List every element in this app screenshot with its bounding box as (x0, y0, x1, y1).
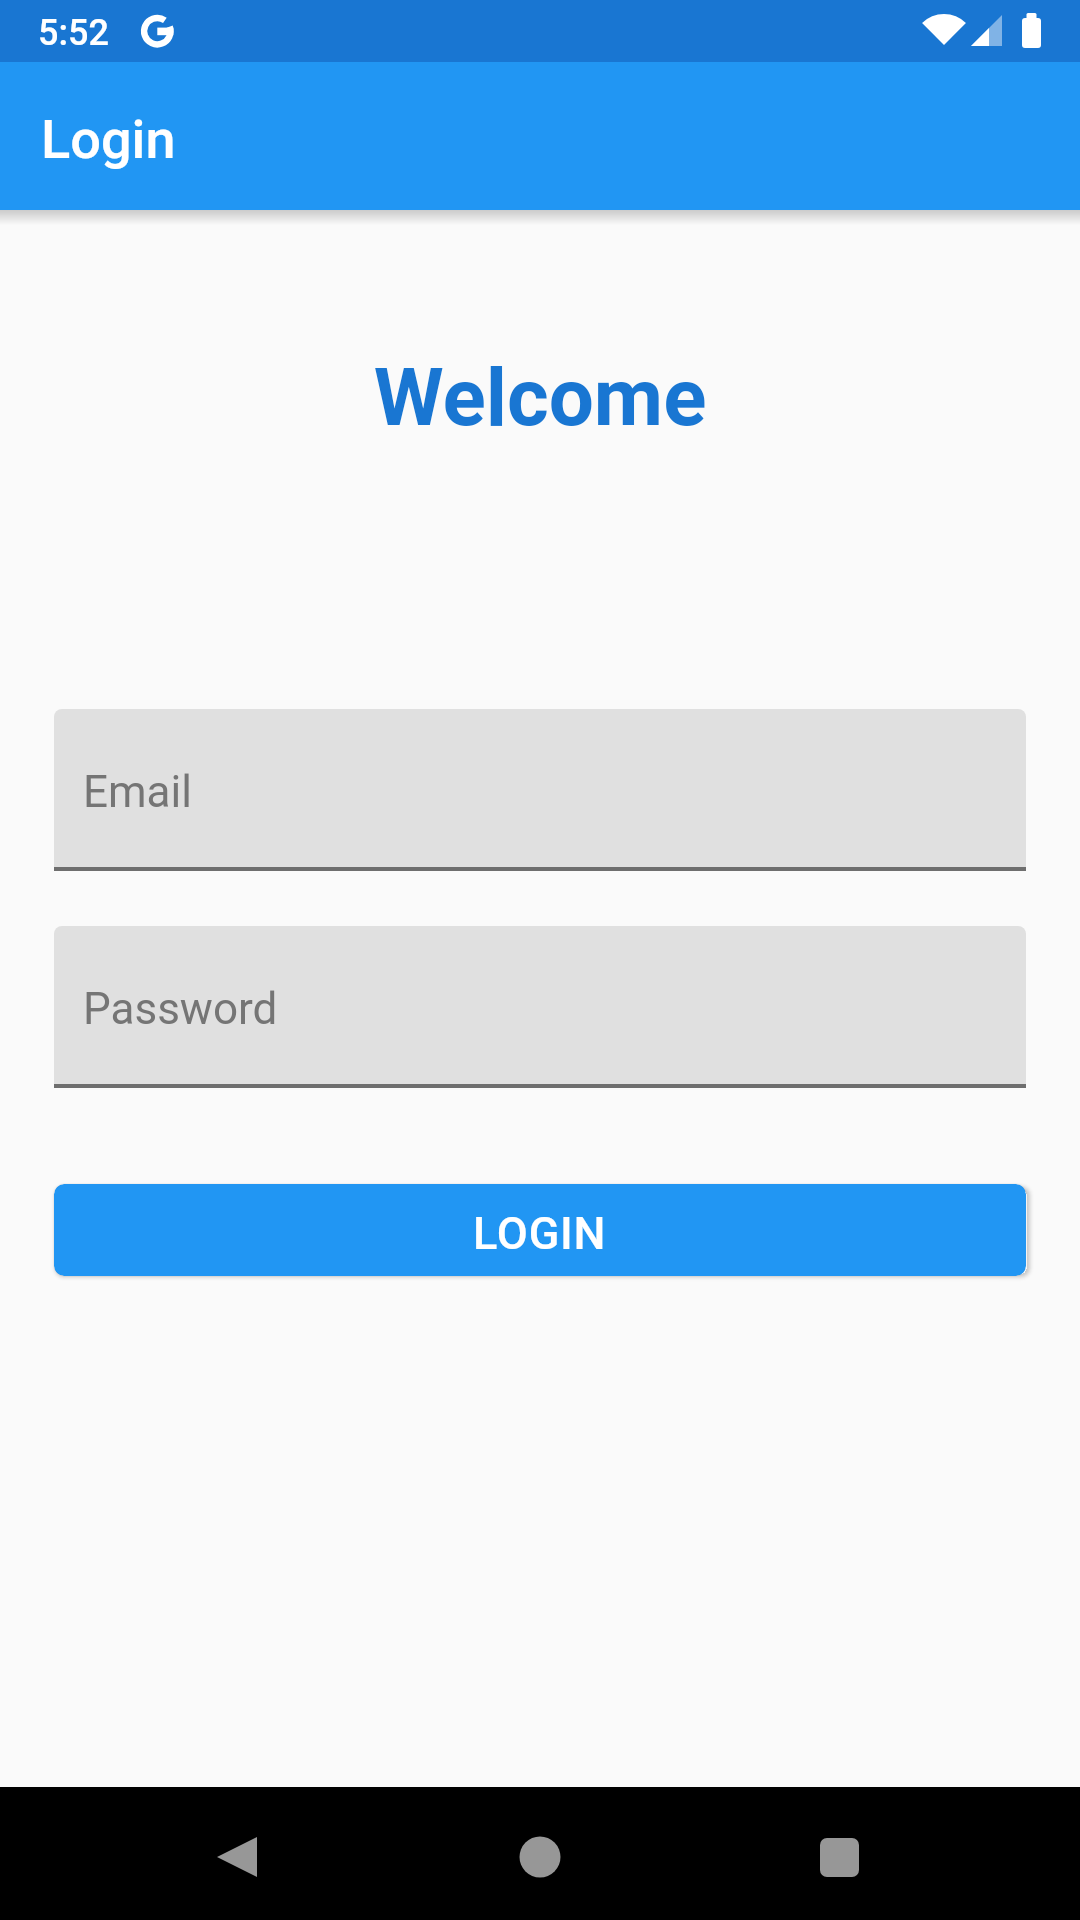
button[interactable]: Email (54, 709, 1026, 871)
staticText: Login (41, 108, 176, 171)
staticText: LOGIN (473, 1207, 607, 1260)
button[interactable] (490, 1804, 590, 1904)
staticText: 5:52 (38, 12, 109, 54)
button[interactable]: LOGIN (54, 1184, 1026, 1276)
button[interactable] (789, 1804, 889, 1904)
staticText: Email (83, 766, 192, 818)
button[interactable] (187, 1804, 287, 1904)
staticText: Welcome (0, 351, 1080, 445)
button[interactable]: Password (54, 926, 1026, 1088)
staticText: Password (83, 983, 278, 1035)
